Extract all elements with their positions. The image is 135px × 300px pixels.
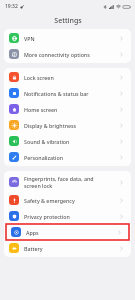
staticText: Safety & emergency: [24, 197, 75, 204]
staticText: Privacy protection: [24, 213, 70, 220]
button[interactable]: Lock screen: [4, 69, 131, 85]
staticText: VPN: [24, 35, 35, 42]
button[interactable]: Personalization: [4, 149, 131, 165]
button[interactable]: Battery: [4, 240, 131, 256]
button[interactable]: Fingerprints, face data, and: [4, 172, 131, 192]
button[interactable]: Sound & vibration: [4, 133, 131, 149]
staticText: Notifications & status bar: [24, 90, 89, 97]
staticText: Home screen: [24, 106, 58, 113]
staticText: Fingerprints, face data, and: [24, 175, 94, 182]
button[interactable]: Privacy protection: [4, 208, 131, 224]
staticText: 19:32: [5, 3, 18, 10]
staticText: Display & brightness: [24, 122, 77, 129]
staticText: More connectivity options: [24, 51, 90, 58]
staticText: screen lock: [24, 182, 53, 189]
button[interactable]: Apps: [6, 224, 129, 240]
button[interactable]: Home screen: [4, 101, 131, 117]
button[interactable]: VPN: [4, 30, 131, 46]
button[interactable]: More connectivity options: [4, 46, 131, 62]
staticText: Settings: [54, 16, 82, 26]
staticText: Battery: [24, 245, 43, 252]
staticText: Sound & vibration: [24, 138, 70, 145]
staticText: Personalization: [24, 154, 64, 161]
staticText: Apps: [26, 229, 39, 236]
button[interactable]: Notifications & status bar: [4, 85, 131, 101]
staticText: Lock screen: [24, 74, 54, 81]
button[interactable]: Display & brightness: [4, 117, 131, 133]
button[interactable]: Safety & emergency: [4, 192, 131, 208]
